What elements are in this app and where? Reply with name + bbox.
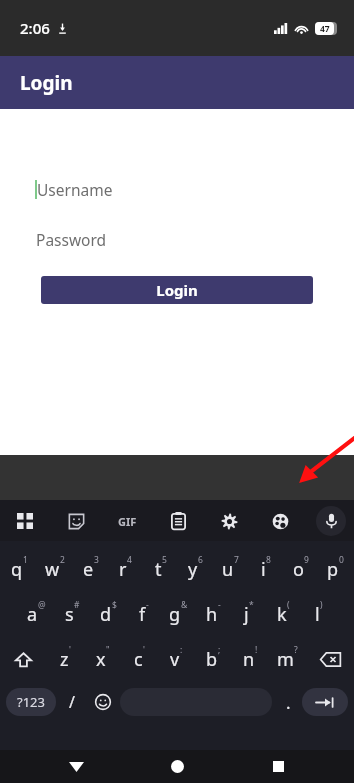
staticText: y bbox=[188, 557, 198, 582]
staticText: Login bbox=[156, 280, 198, 300]
staticText: 8 bbox=[266, 554, 271, 566]
button[interactable]: l bbox=[301, 592, 336, 637]
staticText: z bbox=[60, 647, 69, 672]
staticText: o bbox=[293, 557, 304, 582]
button[interactable]: c bbox=[121, 637, 158, 682]
button[interactable]: e bbox=[73, 547, 108, 592]
button[interactable]: g bbox=[161, 592, 196, 637]
button[interactable]: h bbox=[196, 592, 231, 637]
button[interactable]: z bbox=[47, 637, 84, 682]
staticText: . bbox=[286, 691, 291, 714]
staticText: x bbox=[96, 647, 106, 672]
button[interactable]: d bbox=[90, 592, 126, 637]
staticText: ( bbox=[287, 599, 290, 611]
staticText: ! bbox=[255, 644, 258, 656]
button[interactable]: Shift bbox=[0, 637, 47, 682]
staticText: a bbox=[27, 602, 38, 627]
staticText: d bbox=[100, 602, 112, 627]
button[interactable]: t bbox=[143, 547, 178, 592]
staticText: $ bbox=[112, 599, 117, 611]
button[interactable]: Emoji bbox=[88, 687, 118, 717]
button[interactable]: Voice input bbox=[316, 506, 346, 536]
button[interactable]: Clipboard bbox=[163, 506, 193, 536]
staticText: f bbox=[139, 602, 146, 627]
button[interactable]: j bbox=[231, 592, 266, 637]
button[interactable]: o bbox=[283, 547, 318, 592]
staticText: s bbox=[65, 602, 74, 627]
staticText: GIF bbox=[118, 514, 137, 529]
button[interactable]: w bbox=[37, 547, 73, 592]
button[interactable]: q bbox=[1, 547, 37, 592]
button[interactable]: x bbox=[84, 637, 121, 682]
staticText: @ bbox=[38, 599, 46, 611]
button[interactable]: k bbox=[266, 592, 301, 637]
button[interactable]: Username bbox=[35, 176, 354, 202]
staticText: 3 bbox=[94, 554, 99, 566]
staticText: - bbox=[218, 599, 221, 611]
staticText: v bbox=[170, 647, 180, 672]
button[interactable]: i bbox=[248, 547, 283, 592]
button[interactable]: s bbox=[54, 592, 90, 637]
button[interactable]: y bbox=[178, 547, 213, 592]
staticText: * bbox=[249, 599, 254, 611]
staticText: k bbox=[277, 602, 287, 627]
staticText: p bbox=[327, 557, 339, 582]
staticText: j bbox=[244, 602, 249, 627]
staticText: 0 bbox=[339, 554, 344, 566]
staticText: / bbox=[69, 691, 75, 713]
button[interactable]: . bbox=[274, 687, 302, 717]
button[interactable]: Apps bbox=[10, 506, 40, 536]
staticText: 47 bbox=[320, 23, 330, 35]
button[interactable]: p bbox=[318, 547, 353, 592]
staticText: 2:06 bbox=[20, 18, 50, 38]
staticText: ? bbox=[294, 644, 298, 656]
staticText: Password bbox=[36, 229, 107, 250]
staticText: Username bbox=[37, 179, 113, 200]
staticText: m bbox=[277, 647, 294, 672]
staticText: & bbox=[181, 599, 188, 611]
staticText: 4 bbox=[127, 554, 132, 566]
button[interactable]: GIF bbox=[112, 506, 142, 536]
button[interactable]: Next field bbox=[302, 688, 348, 716]
staticText: # bbox=[74, 599, 80, 611]
staticText: e bbox=[83, 557, 94, 582]
staticText: r bbox=[119, 557, 127, 582]
staticText: ' bbox=[69, 644, 71, 656]
staticText: i bbox=[261, 557, 266, 582]
button[interactable]: n bbox=[232, 637, 269, 682]
button[interactable]: Theme bbox=[265, 506, 295, 536]
button[interactable]: f bbox=[126, 592, 161, 637]
staticText: 1 bbox=[23, 554, 28, 566]
staticText: u bbox=[222, 557, 234, 582]
button[interactable]: ?123 bbox=[6, 688, 56, 716]
button[interactable]: v bbox=[158, 637, 195, 682]
staticText: q bbox=[11, 557, 23, 582]
button[interactable]: Settings bbox=[214, 506, 244, 536]
staticText: 7 bbox=[234, 554, 239, 566]
button[interactable]: / bbox=[56, 686, 88, 718]
button[interactable]: Password bbox=[36, 226, 354, 252]
button[interactable]: r bbox=[108, 547, 143, 592]
button[interactable]: Login bbox=[41, 276, 313, 304]
button[interactable]: m bbox=[269, 637, 306, 682]
staticText: 5 bbox=[162, 554, 167, 566]
staticText: w bbox=[45, 557, 60, 582]
staticText: t bbox=[155, 557, 162, 582]
staticText: Login bbox=[20, 70, 73, 96]
staticText: 2 bbox=[60, 554, 65, 566]
staticText: : bbox=[180, 644, 183, 656]
button[interactable]: Stickers bbox=[61, 506, 91, 536]
staticText: l bbox=[315, 602, 320, 627]
button[interactable]: Home bbox=[157, 750, 197, 783]
button[interactable]: u bbox=[213, 547, 248, 592]
button[interactable]: Back bbox=[56, 750, 96, 783]
button[interactable]: a bbox=[18, 592, 54, 637]
button[interactable]: Recents bbox=[258, 750, 298, 783]
button[interactable]: b bbox=[195, 637, 232, 682]
staticText: g bbox=[169, 602, 181, 627]
button[interactable]: Backspace bbox=[306, 637, 354, 682]
staticText: n bbox=[243, 647, 255, 672]
staticText: 6 bbox=[198, 554, 203, 566]
staticText: c bbox=[134, 647, 143, 672]
